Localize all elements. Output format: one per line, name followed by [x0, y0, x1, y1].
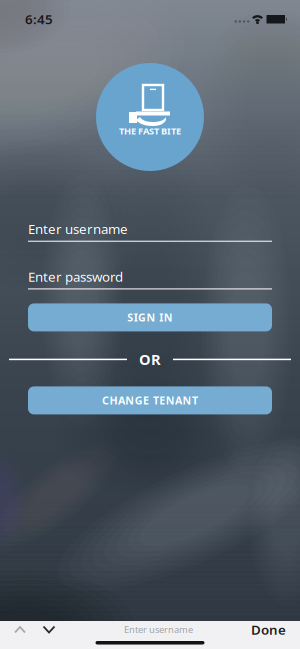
button[interactable]: SIGN IN	[28, 303, 272, 331]
staticText: Done	[251, 621, 286, 638]
button[interactable]: Next field	[36, 625, 64, 633]
button[interactable]: CHANGE TENANT	[28, 386, 272, 414]
staticText: CHANGE TENANT	[102, 393, 198, 407]
staticText: Enter username	[28, 220, 128, 238]
staticText: OR	[139, 350, 161, 369]
button[interactable]: Previous field	[0, 625, 36, 633]
button[interactable]: Enter username	[28, 220, 272, 242]
staticText: THE FAST BITE	[119, 125, 181, 137]
staticText: Enter username	[124, 623, 193, 636]
staticText: SIGN IN	[127, 310, 173, 324]
staticText: Enter password	[28, 268, 123, 285]
button[interactable]: Enter password	[28, 268, 272, 289]
button[interactable]: Done	[251, 621, 300, 638]
staticText: 6:45	[25, 10, 53, 28]
